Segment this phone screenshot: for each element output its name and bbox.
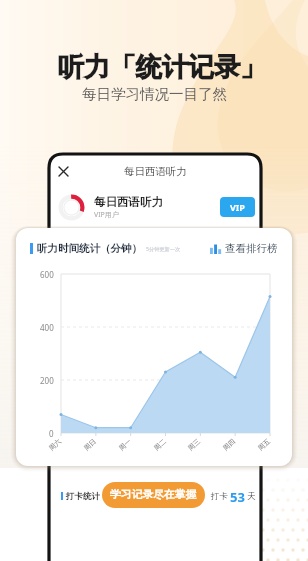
staticText: 查看排行榜 (225, 242, 278, 255)
staticText: 400 (40, 322, 54, 333)
button[interactable]: 查看排行榜 (210, 242, 278, 255)
staticText: 打卡 (211, 491, 228, 502)
staticText: 0 (49, 428, 54, 439)
staticText: 听力时间统计（分钟） (37, 242, 142, 255)
staticText: 5分钟更新一次 (146, 245, 181, 252)
staticText: 53 (230, 488, 245, 504)
staticText: 周日 (82, 436, 98, 453)
staticText: 打卡统计 (66, 491, 100, 502)
staticText: 每日学习情况一目了然 (82, 85, 227, 103)
staticText: 周三 (186, 436, 202, 453)
staticText: 天 (247, 491, 256, 502)
button[interactable]: 学习记录尽在掌握 (102, 482, 205, 508)
staticText: 周二 (152, 436, 168, 453)
staticText: VIP用户 (94, 210, 119, 220)
button[interactable]: 每日西语听力 (57, 192, 255, 222)
staticText: 周六 (47, 436, 63, 453)
staticText: 听力「统计记录」 (58, 51, 266, 84)
button[interactable]: VIP (220, 197, 255, 217)
staticText: 学习记录尽在掌握 (110, 488, 197, 502)
staticText: 每日西语听力 (94, 195, 163, 209)
staticText: 周五 (256, 436, 272, 453)
staticText: 周四 (221, 436, 237, 453)
staticText: 200 (40, 375, 54, 386)
staticText: 周一 (117, 436, 133, 453)
button[interactable]: Close (53, 161, 73, 181)
staticText: 每日西语听力 (124, 165, 187, 178)
staticText: VIP (230, 201, 245, 213)
staticText: 600 (40, 269, 54, 280)
